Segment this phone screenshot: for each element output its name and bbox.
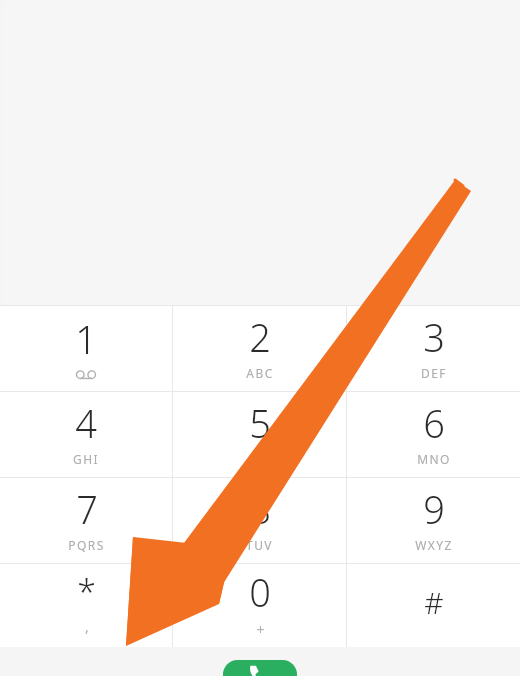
- staticText: GHI: [73, 451, 99, 467]
- staticText: 9: [423, 483, 445, 535]
- staticText: MNO: [417, 451, 451, 467]
- button[interactable]: *: [0, 564, 172, 647]
- staticText: #: [424, 582, 444, 623]
- staticText: PQRS: [68, 537, 105, 553]
- button[interactable]: 1: [0, 306, 172, 391]
- staticText: 1: [75, 313, 97, 365]
- staticText: TUV: [246, 537, 273, 553]
- button[interactable]: [0, 0, 520, 305]
- button[interactable]: 2: [173, 306, 346, 391]
- button[interactable]: 6: [347, 392, 520, 477]
- staticText: 8: [249, 483, 271, 535]
- button[interactable]: #: [347, 564, 520, 647]
- button[interactable]: 5: [173, 392, 346, 477]
- button[interactable]: 0: [173, 564, 346, 647]
- staticText: ,: [85, 617, 89, 636]
- staticText: 6: [423, 397, 445, 449]
- staticText: DEF: [421, 365, 447, 381]
- staticText: 0: [249, 566, 271, 618]
- staticText: +: [256, 620, 265, 639]
- staticText: 7: [76, 483, 98, 535]
- button[interactable]: Call: [223, 660, 297, 676]
- staticText: JKL: [249, 451, 271, 467]
- staticText: 4: [75, 397, 97, 449]
- staticText: *: [77, 569, 96, 615]
- button[interactable]: 8: [173, 478, 346, 563]
- staticText: 5: [249, 397, 271, 449]
- staticText: WXYZ: [415, 537, 453, 553]
- button[interactable]: 3: [347, 306, 520, 391]
- button[interactable]: 9: [347, 478, 520, 563]
- staticText: 2: [249, 311, 271, 363]
- staticText: 3: [423, 311, 445, 363]
- staticText: ABC: [246, 365, 274, 381]
- button[interactable]: 4: [0, 392, 172, 477]
- button[interactable]: 7: [0, 478, 172, 563]
